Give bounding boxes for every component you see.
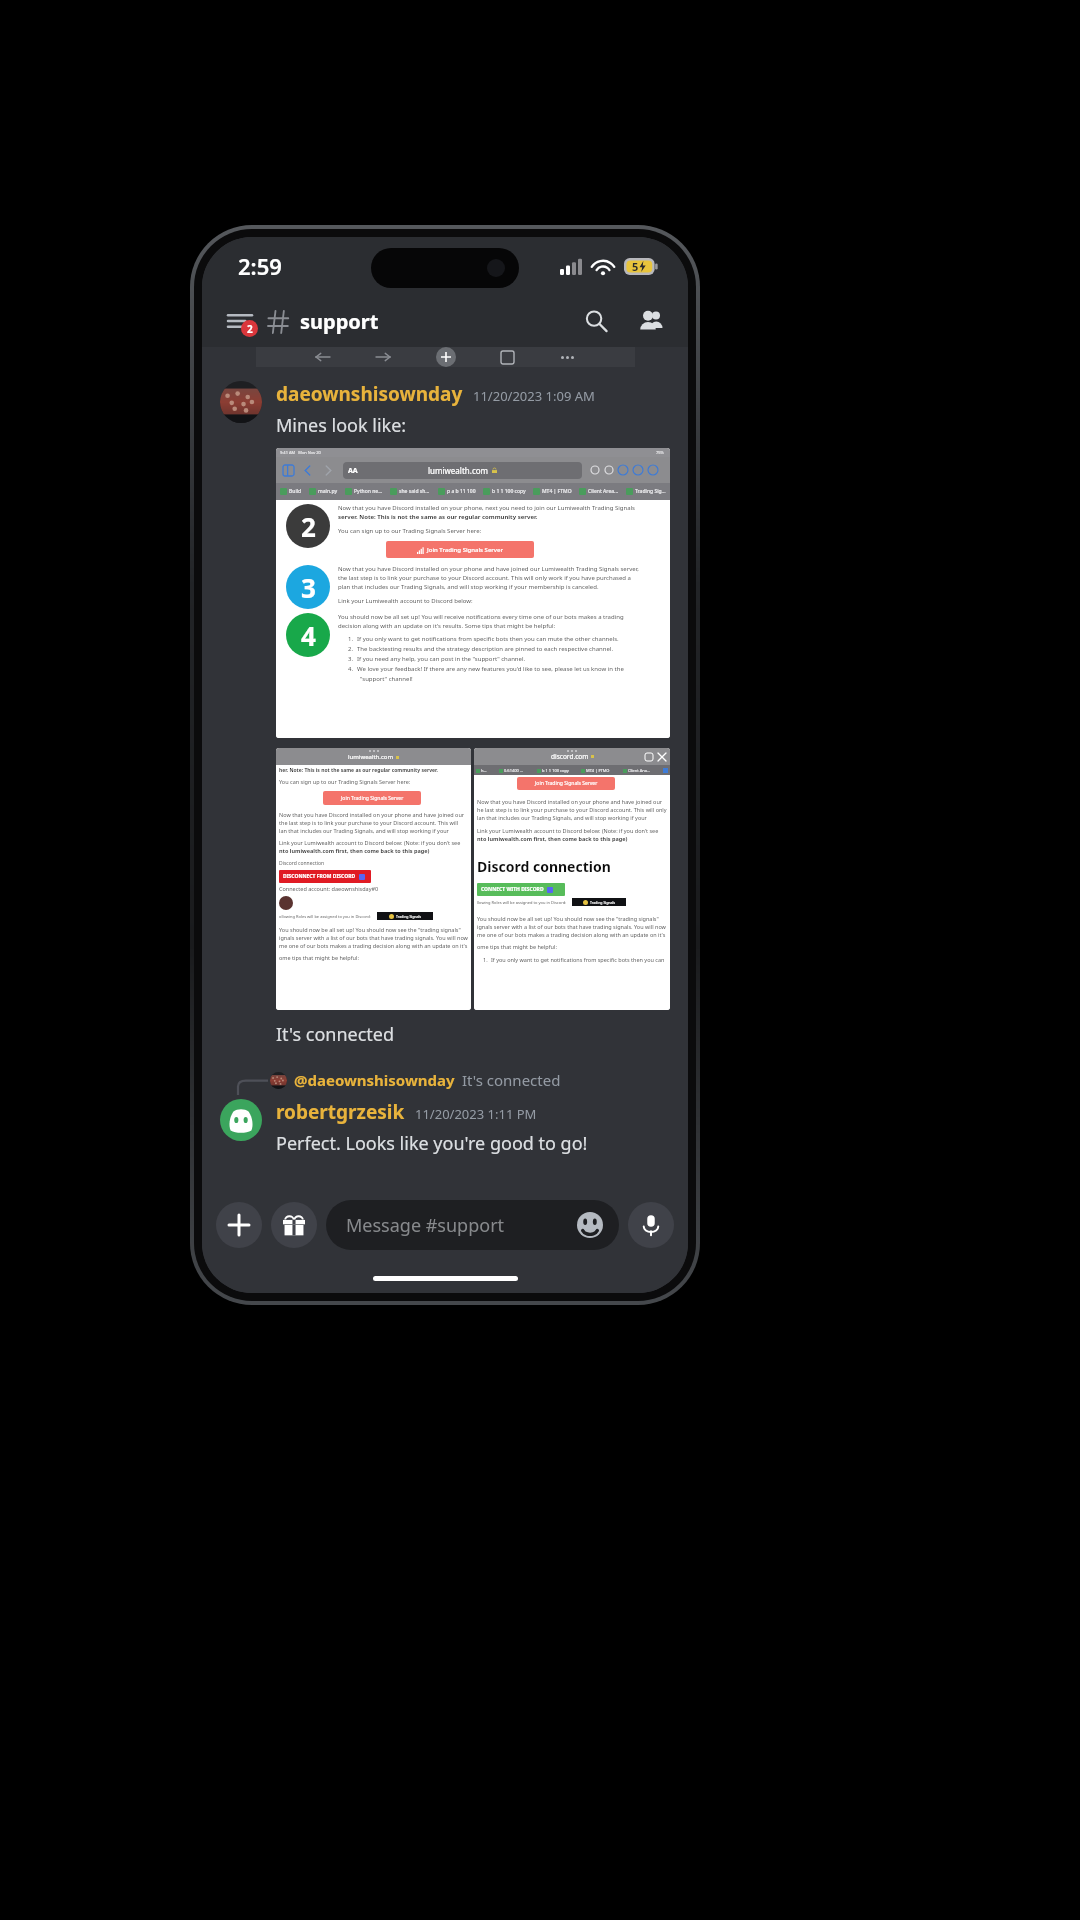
staticText: decision along with an update on it's re… [338, 622, 556, 630]
staticText: me one of our bots makes a trading decis… [477, 931, 667, 938]
staticText: 1. [483, 956, 488, 963]
staticText: 2 [247, 322, 253, 336]
staticText: Python ne... [354, 488, 383, 495]
staticText: nto lumiwealth.com first, then come back… [279, 847, 430, 854]
staticText: ome tips that might be helpful: [279, 954, 359, 961]
staticText: Now that you have Discord installed on y… [338, 504, 635, 512]
staticText: It's connected [462, 1070, 561, 1090]
staticText: Now that you have Discord installed on y… [477, 798, 667, 805]
staticText: 1. [348, 635, 354, 643]
staticText: AA [348, 466, 358, 476]
button[interactable]: Send a gift [271, 1202, 317, 1248]
staticText: 5 [632, 259, 639, 274]
staticText: her. Note: This is not the same as our r… [279, 767, 438, 774]
button[interactable]: Open channel list [220, 301, 260, 341]
staticText: lumiwealth.com [348, 753, 394, 761]
staticText: "support" channel! [360, 675, 413, 683]
staticText: Discord connection [477, 857, 611, 876]
staticText: Discord connection [279, 860, 325, 867]
staticText: You can sign up to our Trading Signals S… [279, 778, 411, 785]
staticText: Message #support [346, 1213, 505, 1238]
button[interactable]: Message #support [326, 1200, 619, 1250]
staticText: Now that you have Discord installed on y… [338, 565, 639, 573]
staticText: You should now be all set up! You should… [477, 915, 667, 922]
staticText: Mines look like: [276, 413, 407, 438]
staticText: You should now be all set up! You should… [279, 926, 468, 933]
staticText: llowing Roles will be assigned to you in… [477, 900, 567, 905]
staticText: We love your feedback! If there are any … [357, 665, 624, 673]
staticText: he last step is to link your purchase to… [477, 806, 667, 813]
staticText: server. Note: This is not the same as ou… [338, 513, 538, 521]
staticText: h... [481, 768, 487, 773]
staticText: 4 [301, 618, 316, 653]
staticText: support [300, 308, 379, 335]
staticText: b 1 1 100 copy [542, 768, 569, 773]
button[interactable]: Voice message [628, 1202, 674, 1248]
button[interactable]: Add attachment [216, 1202, 262, 1248]
staticText: Link your Lumiwealth account to Discord … [279, 839, 468, 846]
staticText: @daeownshisownday [294, 1070, 455, 1090]
staticText: Connected account: daeownshisday#0 [279, 885, 379, 892]
staticText: she said sh... [399, 488, 430, 495]
staticText: 9:41 AM Mon Nov 20 [280, 450, 321, 455]
button[interactable]: support [268, 308, 576, 335]
staticText: MT4 | FTMO [542, 488, 572, 495]
staticText: If you need any help, you can post in th… [357, 655, 526, 663]
staticText: ollowing Roles will be assigned to you i… [279, 914, 371, 919]
staticText: Join Trading Signals Server [535, 780, 598, 787]
button[interactable]: Join Trading Signals Server [386, 541, 534, 558]
staticText: Now that you have Discord installed on y… [279, 811, 468, 818]
staticText: p a b 11 100 [447, 488, 476, 495]
staticText: 3. [348, 655, 354, 663]
staticText: MT4 | FTMO [586, 768, 610, 773]
staticText: Join Trading Signals Server [341, 795, 404, 802]
staticText: Client Ana... [628, 768, 651, 773]
staticText: Trading Signals [396, 914, 422, 919]
staticText: main.py [318, 488, 338, 495]
staticText: 75% [656, 450, 664, 455]
staticText: 2. [348, 645, 354, 653]
button[interactable]: Search [576, 301, 616, 341]
staticText: Perfect. Looks like you're good to go! [276, 1131, 588, 1156]
button[interactable]: lumiwealth.com [276, 748, 471, 1010]
staticText: b 1 1 100 copy [492, 488, 526, 495]
staticText: It's connected [276, 1022, 395, 1047]
staticText: me one of our bots makes a trading decis… [279, 942, 468, 949]
staticText: Build [289, 488, 302, 495]
staticText: discord.com [551, 752, 589, 761]
staticText: Join Trading Signals Server [427, 546, 504, 554]
staticText: robertgrzesik [276, 1099, 405, 1125]
staticText: lan that includes our Trading Signals, a… [279, 827, 468, 834]
staticText: nto lumiwealth.com first, then come back… [477, 835, 628, 842]
staticText: Client Area... [588, 488, 619, 495]
staticText: Link your Lumiwealth account to Discord … [338, 597, 473, 605]
staticText: 0.61400 ... [504, 768, 524, 773]
staticText: You can sign up to our Trading Signals S… [338, 527, 482, 535]
staticText: The backtesting results and the strategy… [357, 645, 614, 653]
staticText: If you only want to get notifications fr… [491, 956, 667, 963]
staticText: ome tips that might be helpful: [477, 943, 557, 950]
staticText: Link your Lumiwealth account to Discord … [477, 827, 667, 834]
staticText: If you only want to get notifications fr… [357, 635, 619, 643]
staticText: the last step is to link your purchase t… [279, 819, 468, 826]
button[interactable]: 9:41 AM Mon Nov 20 [276, 448, 670, 738]
staticText: 4. [348, 665, 354, 673]
staticText: Trading Sig... [635, 488, 666, 495]
button[interactable]: Emoji [575, 1210, 605, 1240]
staticText: DISCONNECT FROM DISCORD [283, 873, 356, 880]
button[interactable]: discord.com [474, 748, 670, 1010]
staticText: 11/20/2023 1:09 AM [473, 387, 595, 405]
button[interactable]: Members [630, 301, 670, 341]
staticText: plan that includes our Trading Signals, … [338, 583, 599, 591]
staticText: lumiwealth.com [428, 465, 489, 476]
staticText: CONNECT WITH DISCORD [481, 886, 544, 893]
staticText: 11/20/2023 1:11 PM [415, 1105, 537, 1123]
staticText: 3 [301, 570, 316, 605]
staticText: daeownshisownday [276, 381, 463, 407]
staticText: Trading Signals [590, 900, 616, 905]
staticText: the last step is to link your purchase t… [338, 574, 631, 582]
staticText: ignals server with a list of our bots th… [279, 934, 468, 941]
staticText: You should now be all set up! You will r… [338, 613, 624, 621]
staticText: ignals server with a list of our bots th… [477, 923, 667, 930]
staticText: 2:59 [238, 251, 282, 281]
